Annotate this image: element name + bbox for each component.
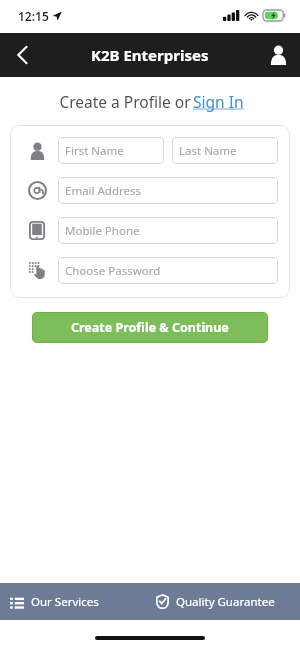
button[interactable]: Sign In xyxy=(193,91,244,112)
staticText: Last Name xyxy=(179,143,237,159)
button[interactable]: Email Address xyxy=(58,177,278,204)
button[interactable]: Choose Password xyxy=(58,257,278,284)
button[interactable]: Back xyxy=(0,33,44,77)
button[interactable]: Create Profile & Continue xyxy=(32,312,268,343)
staticText: Choose Password xyxy=(65,263,161,279)
staticText: Quality Guarantee xyxy=(176,594,275,610)
staticText: 12:15 xyxy=(18,8,49,24)
button[interactable]: Our Services xyxy=(0,583,150,620)
button[interactable]: Mobile Phone xyxy=(58,217,278,244)
staticText: Create a Profile or xyxy=(57,91,193,112)
staticText: Mobile Phone xyxy=(65,223,140,239)
button[interactable]: First Name xyxy=(58,137,164,164)
staticText: Create Profile & Continue xyxy=(71,319,229,336)
staticText: Email Address xyxy=(65,183,142,199)
staticText: K2B Enterprises xyxy=(91,45,209,65)
button[interactable]: Quality Guarantee xyxy=(150,583,300,620)
staticText: Our Services xyxy=(31,594,99,610)
staticText: Sign In xyxy=(193,91,244,112)
button[interactable]: Account xyxy=(256,33,300,77)
button[interactable]: Last Name xyxy=(172,137,278,164)
staticText: First Name xyxy=(65,143,124,159)
